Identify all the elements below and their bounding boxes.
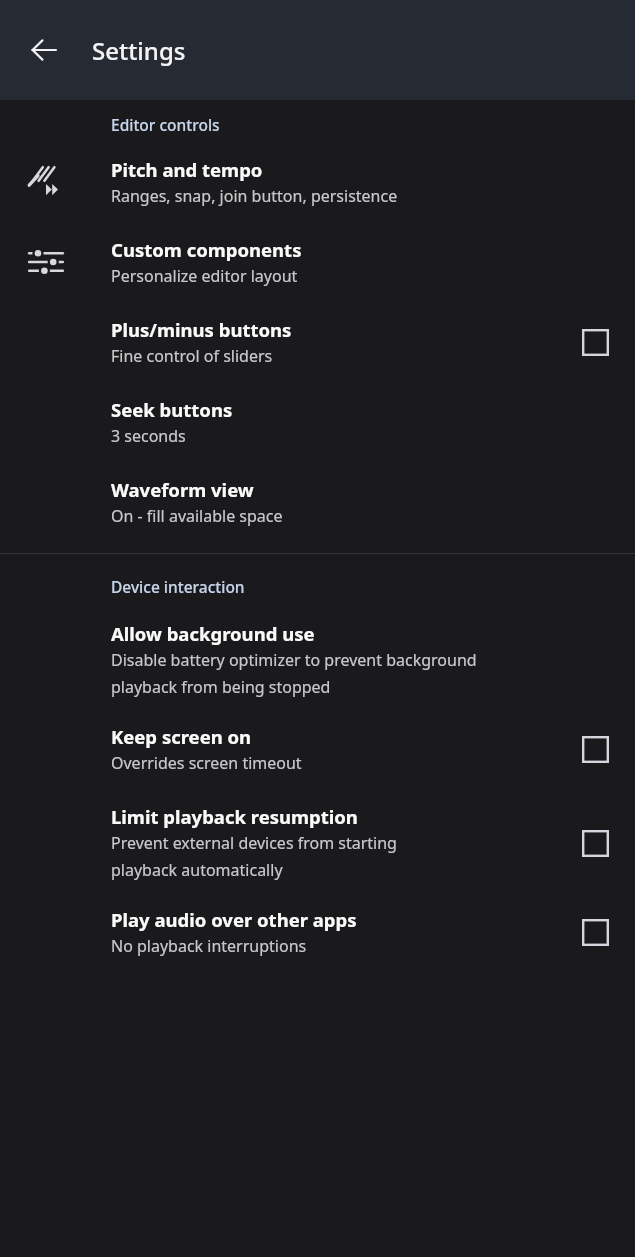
staticText: Pitch and tempo	[111, 157, 263, 182]
staticText: Ranges, snap, join button, persistence	[111, 185, 398, 207]
button[interactable]: Plus/minus buttons	[0, 317, 635, 367]
button[interactable]: Toggle Keep screen on	[575, 729, 615, 769]
staticText: Editor controls	[111, 114, 220, 135]
button[interactable]: Toggle Play audio over other apps	[575, 912, 615, 952]
staticText: On - fill available space	[111, 505, 283, 527]
staticText: Seek buttons	[111, 397, 233, 422]
staticText: Waveform view	[111, 477, 254, 502]
button[interactable]: Waveform view	[0, 477, 635, 527]
staticText: Personalize editor layout	[111, 265, 298, 287]
staticText: Device interaction	[111, 576, 245, 597]
staticText: 3 seconds	[111, 425, 186, 447]
button[interactable]: Toggle Plus/minus buttons	[575, 322, 615, 362]
staticText: Limit playback resumption	[111, 804, 358, 829]
button[interactable]: Toggle Limit playback resumption	[575, 823, 615, 863]
button[interactable]: Play audio over other apps	[0, 907, 635, 957]
staticText: No playback interruptions	[111, 935, 307, 957]
button[interactable]: Back	[20, 26, 68, 74]
button[interactable]: Custom components	[0, 237, 635, 287]
staticText: Allow background use	[111, 621, 315, 646]
staticText: Keep screen on	[111, 724, 252, 749]
staticText: Settings	[92, 34, 186, 67]
staticText: Disable battery optimizer to prevent bac…	[111, 649, 477, 698]
staticText: Play audio over other apps	[111, 907, 357, 932]
button[interactable]: Pitch and tempo	[0, 157, 635, 207]
staticText: Custom components	[111, 237, 302, 262]
button[interactable]: Seek buttons	[0, 397, 635, 447]
staticText: Prevent external devices from starting p…	[111, 832, 397, 881]
staticText: Fine control of sliders	[111, 345, 273, 367]
button[interactable]: Limit playback resumption	[0, 804, 635, 881]
button[interactable]: Allow background use	[0, 621, 635, 698]
button[interactable]: Keep screen on	[0, 724, 635, 774]
staticText: Plus/minus buttons	[111, 317, 292, 342]
staticText: Overrides screen timeout	[111, 752, 302, 774]
